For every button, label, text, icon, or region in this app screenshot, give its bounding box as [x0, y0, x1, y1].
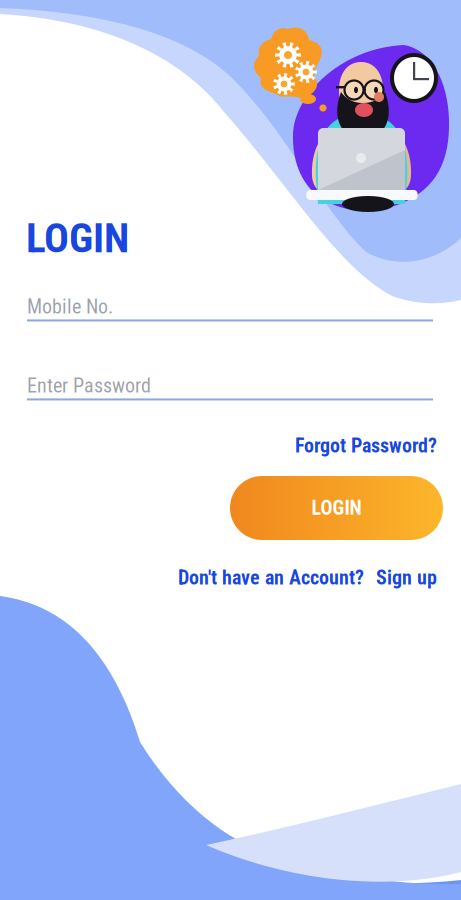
staticText: Mobile No. [27, 295, 113, 318]
staticText: Enter Password [27, 374, 151, 397]
staticText: LOGIN [311, 496, 361, 520]
button[interactable]: LOGIN [230, 476, 443, 540]
staticText: Sign up [376, 566, 437, 589]
button[interactable]: Sign up [376, 563, 437, 592]
staticText: LOGIN [26, 214, 129, 262]
button[interactable]: Forgot Password? [295, 430, 437, 461]
staticText: Forgot Password? [295, 434, 437, 457]
staticText: Don't have an Account? [178, 566, 364, 589]
button[interactable]: Don't have an Account? [178, 563, 364, 592]
